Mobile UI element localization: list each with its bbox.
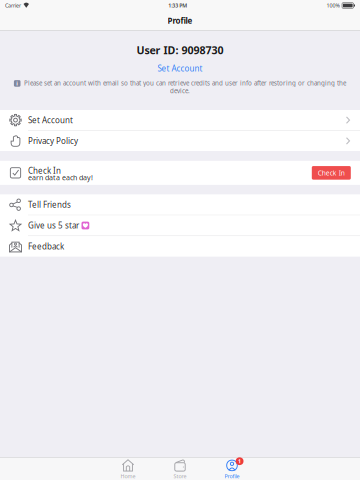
staticText: Set Account — [157, 63, 202, 74]
button[interactable]: Check In — [0, 161, 360, 185]
staticText: Store — [173, 473, 186, 480]
staticText: device. — [170, 87, 190, 95]
staticText: Check In — [318, 168, 345, 177]
button[interactable]: Set Account — [153, 62, 206, 75]
staticText: Profile — [224, 473, 239, 480]
staticText: 1 — [238, 458, 241, 465]
button[interactable]: 1 — [219, 458, 245, 480]
button[interactable]: Tell Friends — [0, 195, 360, 215]
button[interactable]: Home — [115, 458, 141, 480]
staticText: Profile — [167, 15, 192, 26]
staticText: User ID: 9098730 — [136, 43, 223, 57]
staticText: Set Account — [28, 115, 73, 125]
staticText: Give us 5 star — [28, 220, 79, 231]
staticText: earn data each day! — [28, 173, 93, 182]
staticText: 1:33 PM — [168, 2, 187, 9]
staticText: Carrier — [5, 2, 21, 9]
staticText: Privacy Policy — [28, 136, 78, 146]
button[interactable]: Set Account — [0, 110, 360, 130]
button[interactable]: Store — [167, 458, 193, 480]
staticText: Home — [120, 473, 135, 480]
staticText: Check In — [28, 165, 61, 176]
staticText: Tell Friends — [28, 199, 71, 210]
staticText: Feedback — [28, 241, 64, 252]
staticText: Please set an account with email so that… — [24, 79, 346, 87]
staticText: 100% — [326, 2, 339, 9]
button[interactable]: Give us 5 star — [0, 215, 360, 236]
button[interactable]: Feedback — [0, 236, 360, 256]
button[interactable]: Privacy Policy — [0, 131, 360, 151]
staticText: i — [16, 80, 18, 87]
